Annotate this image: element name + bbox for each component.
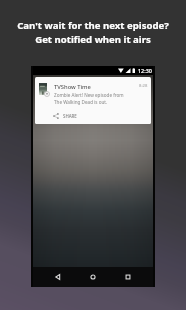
- button[interactable]: TVShow Time: [35, 77, 151, 124]
- button[interactable]: SHARE: [39, 113, 77, 119]
- staticText: Can't wait for the next episode?: [17, 19, 169, 32]
- staticText: TVShow Time: [54, 83, 91, 91]
- staticText: Get notified when it airs: [35, 33, 151, 46]
- staticText: SHARE: [63, 113, 77, 119]
- staticText: Zombie Alert! New episode from: [54, 92, 124, 98]
- staticText: The Walking Dead is out.: [54, 99, 108, 105]
- button[interactable]: Home: [83, 267, 103, 287]
- staticText: 8:28: [139, 83, 148, 89]
- button[interactable]: Recent apps: [118, 267, 138, 287]
- button[interactable]: Back: [48, 267, 68, 287]
- staticText: 12:30: [138, 67, 152, 74]
